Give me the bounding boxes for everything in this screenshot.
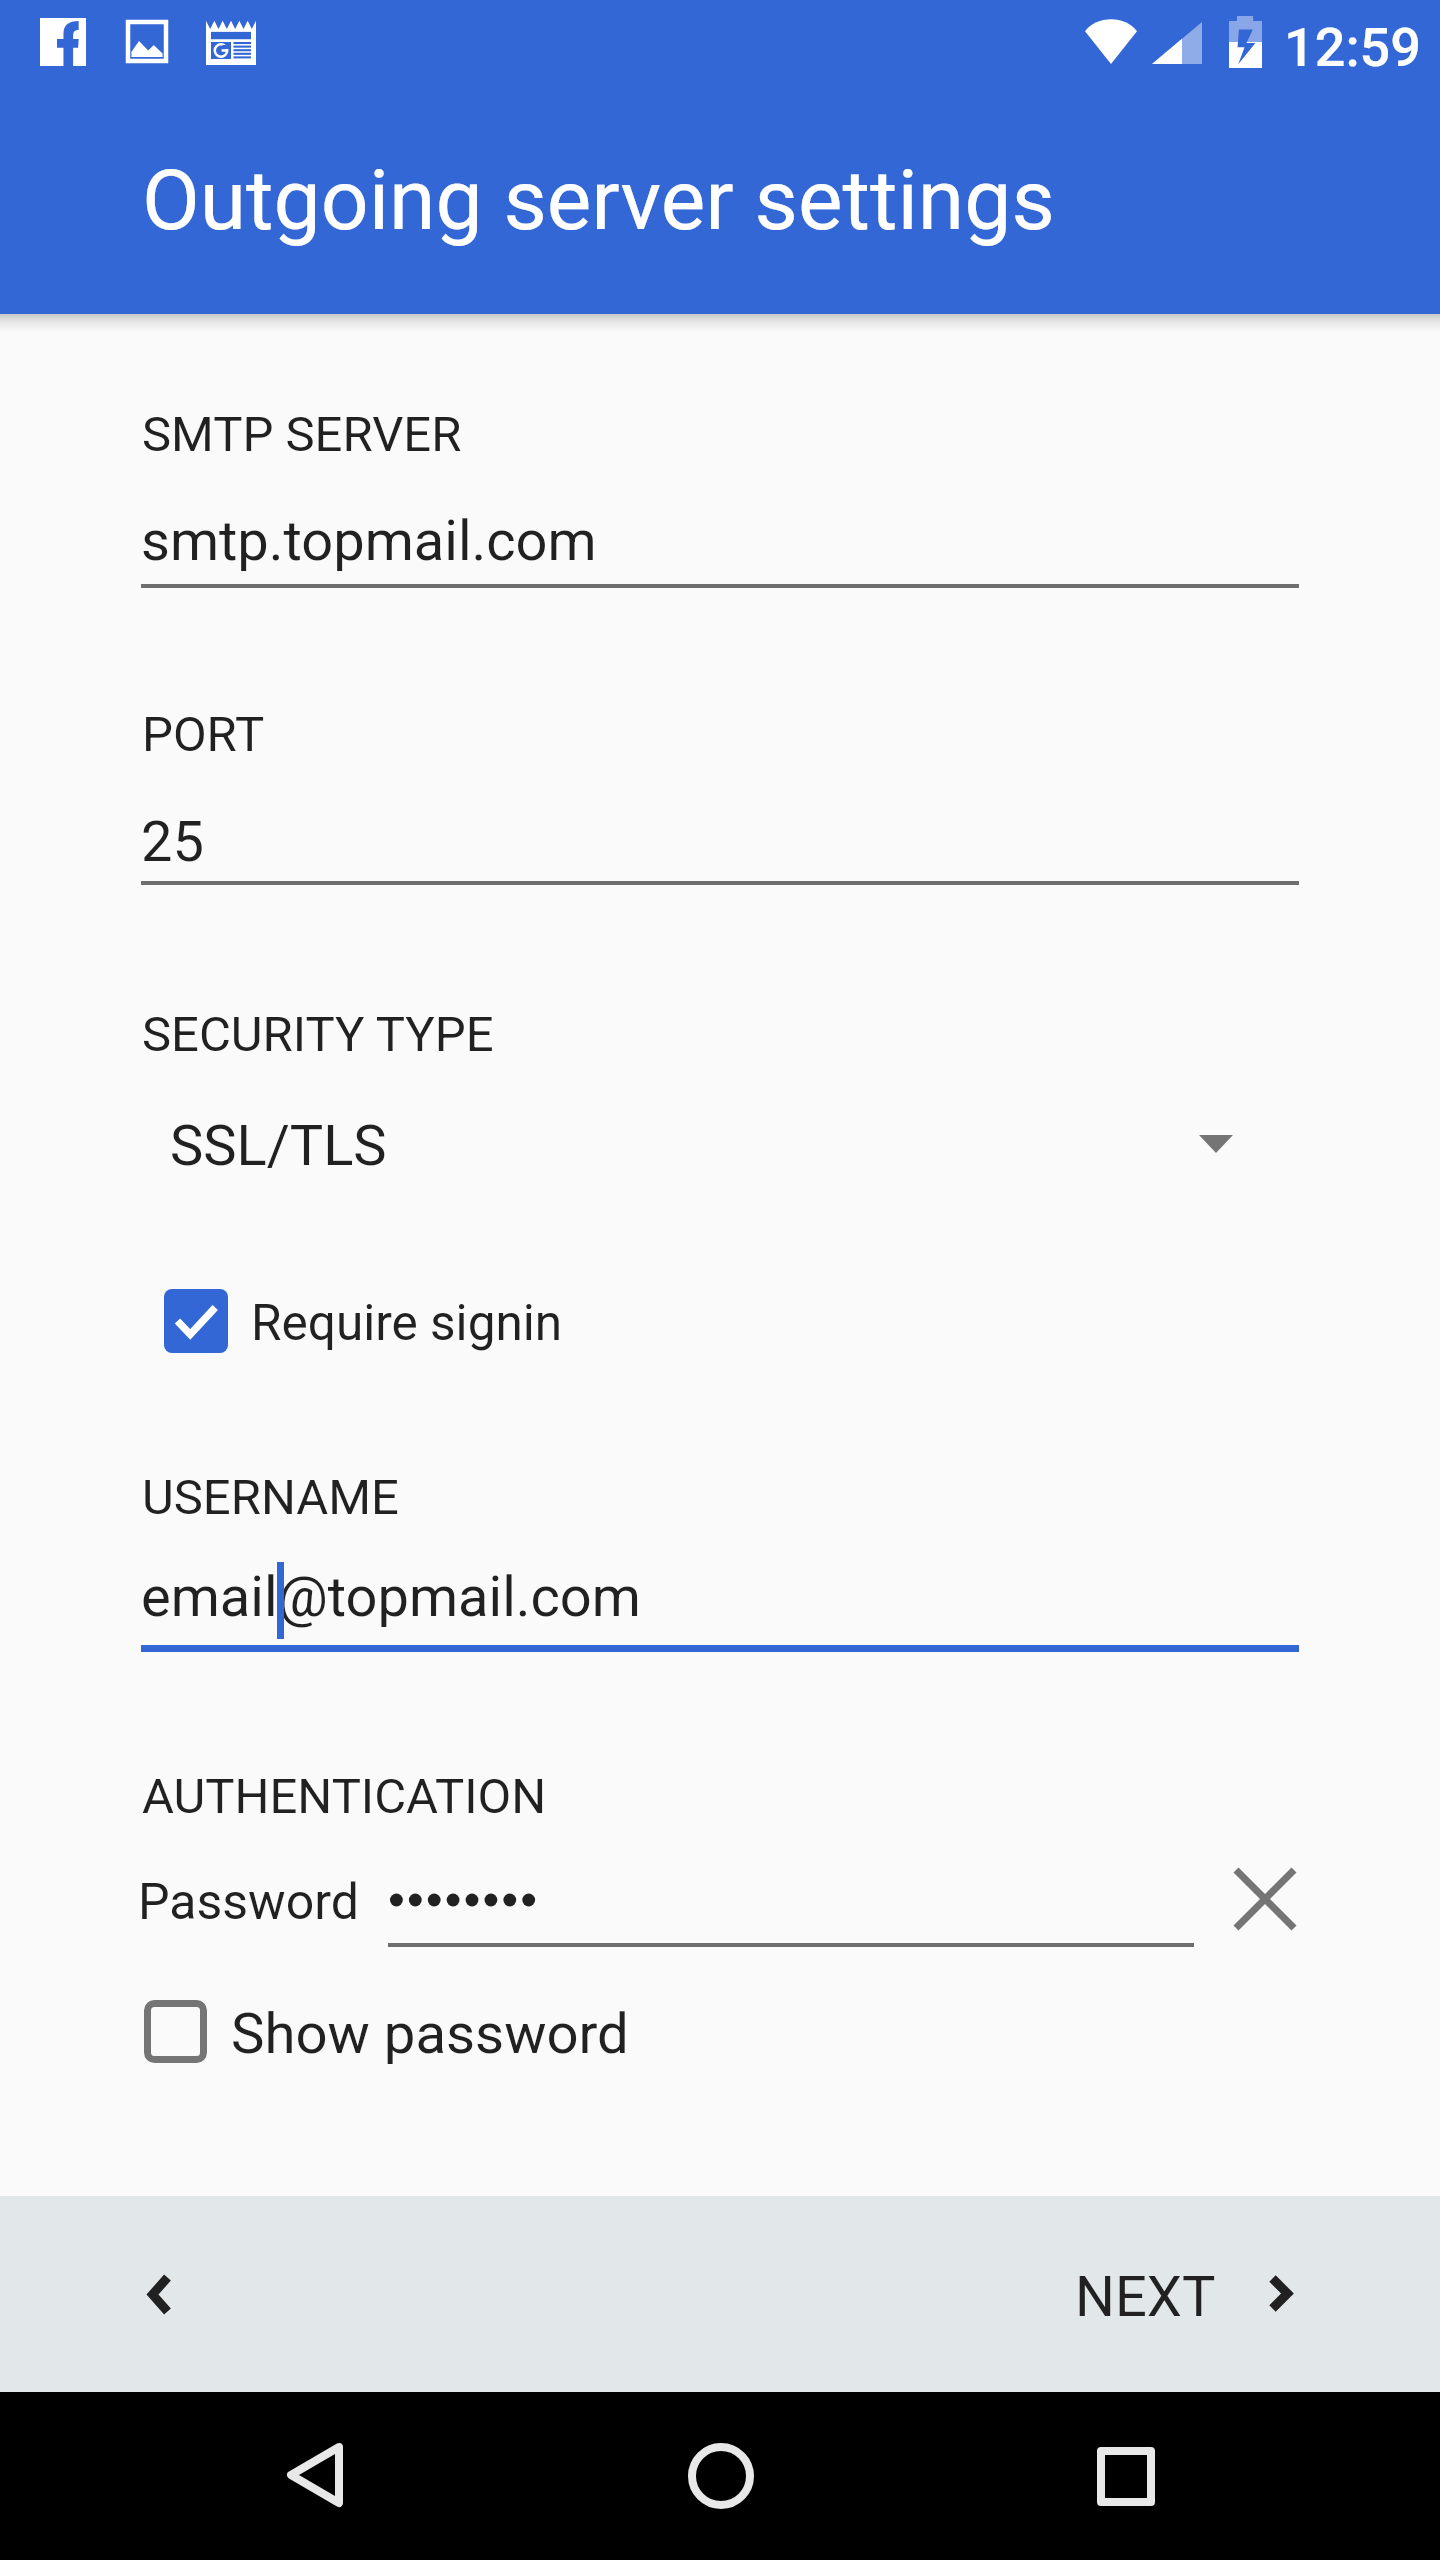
button[interactable]: NEXT — [1040, 2243, 1340, 2343]
button[interactable]: Previous — [110, 2243, 210, 2343]
staticText: smtp.topmail.com — [141, 508, 597, 574]
staticText: USERNAME — [142, 1469, 399, 1526]
button[interactable]: SSL/TLS — [141, 1092, 1299, 1204]
button[interactable]: Require signin — [150, 1275, 610, 1367]
button[interactable]: 25 — [141, 798, 1299, 885]
staticText: Show password — [231, 2001, 629, 2067]
staticText: Outgoing server settings — [142, 151, 1055, 249]
staticText: Password — [138, 1873, 359, 1932]
button[interactable]: Home — [664, 2420, 776, 2532]
button[interactable]: Back — [260, 2422, 372, 2534]
button[interactable]: Show password — [130, 1986, 640, 2076]
button[interactable]: Recent apps — [1069, 2420, 1181, 2532]
staticText: Require signin — [251, 1294, 563, 1352]
staticText: 12:59 — [1284, 16, 1422, 79]
button[interactable]: email@topmail.com — [141, 1553, 1299, 1652]
button[interactable]: smtp.topmail.com — [141, 497, 1299, 588]
button[interactable]: Clear password — [1215, 1849, 1315, 1949]
staticText: NEXT — [1075, 2264, 1216, 2330]
staticText: SECURITY TYPE — [142, 1006, 494, 1063]
button[interactable] — [388, 1862, 1194, 1947]
staticText: PORT — [142, 706, 265, 763]
staticText: email@topmail.com — [141, 1564, 641, 1630]
staticText: 25 — [141, 809, 204, 875]
staticText: AUTHENTICATION — [142, 1768, 547, 1825]
staticText: SMTP SERVER — [142, 406, 462, 463]
staticText: SSL/TLS — [170, 1113, 387, 1179]
